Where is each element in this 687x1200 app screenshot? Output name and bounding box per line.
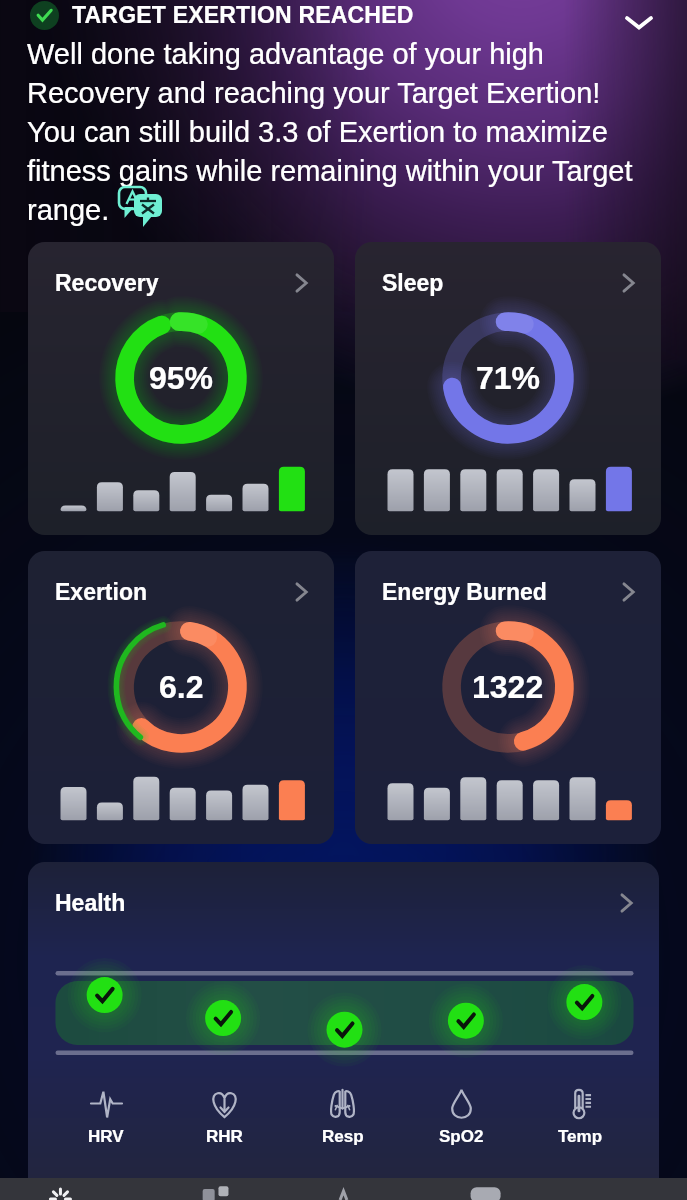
button[interactable]: Energy Burned xyxy=(355,551,661,844)
staticText: Recovery xyxy=(55,270,159,296)
staticText: 6.2 xyxy=(159,669,204,705)
staticText: Resp xyxy=(322,1127,364,1146)
button[interactable]: Exertion xyxy=(28,551,334,844)
button[interactable]: HRV xyxy=(47,1088,165,1146)
button[interactable]: Translate xyxy=(117,186,169,224)
staticText: 1322 xyxy=(472,669,544,705)
staticText: Exertion xyxy=(55,579,148,605)
staticText: Health xyxy=(55,890,126,916)
staticText: HRV xyxy=(88,1127,124,1146)
button[interactable]: Health xyxy=(28,862,659,1178)
button[interactable]: Recovery xyxy=(28,242,334,535)
staticText: Sleep xyxy=(382,270,444,296)
staticText: RHR xyxy=(206,1127,243,1146)
button[interactable]: Resp xyxy=(283,1088,402,1146)
staticText: Well done taking advantage of your high … xyxy=(27,38,648,226)
staticText: 71% xyxy=(476,360,541,396)
button[interactable]: Sleep xyxy=(355,242,661,535)
staticText: Energy Burned xyxy=(382,579,547,605)
button[interactable]: Temp xyxy=(521,1088,640,1146)
button[interactable]: Collapse xyxy=(617,0,661,44)
button[interactable]: RHR xyxy=(165,1088,283,1146)
button[interactable]: SpO2 xyxy=(402,1088,521,1146)
staticText: 95% xyxy=(149,360,214,396)
staticText: TARGET EXERTION REACHED xyxy=(72,2,414,28)
staticText: SpO2 xyxy=(439,1127,484,1146)
staticText: Temp xyxy=(558,1127,603,1146)
